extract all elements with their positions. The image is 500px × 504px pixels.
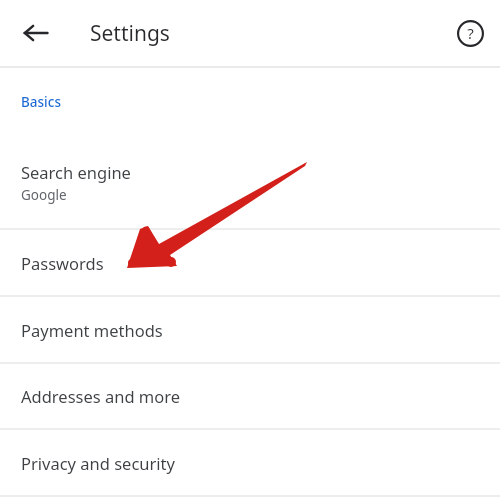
staticText: Payment methods: [21, 319, 163, 341]
button[interactable]: Addresses and more: [0, 364, 500, 428]
staticText: Addresses and more: [21, 385, 181, 407]
staticText: Search engine: [21, 161, 131, 183]
staticText: Passwords: [21, 252, 104, 274]
button[interactable]: Help: [446, 9, 494, 57]
button[interactable]: Back: [12, 9, 60, 57]
button[interactable]: Privacy and security: [0, 430, 500, 495]
staticText: Privacy and security: [21, 452, 175, 474]
button[interactable]: Passwords: [0, 230, 500, 295]
staticText: Basics: [21, 93, 61, 111]
button[interactable]: Payment methods: [0, 297, 500, 362]
staticText: Google: [21, 186, 67, 204]
button[interactable]: Search engine: [0, 136, 500, 228]
staticText: Settings: [90, 19, 170, 48]
staticText: ?: [467, 23, 474, 43]
